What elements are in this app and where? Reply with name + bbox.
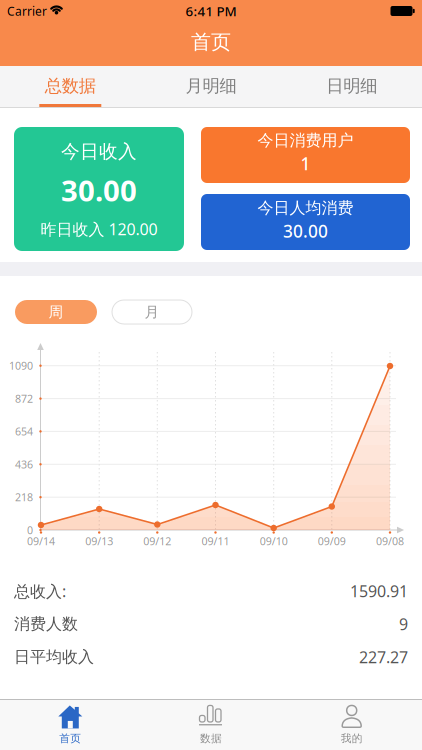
staticText: 今日人均消费 — [257, 198, 353, 218]
button[interactable]: 月明细 — [141, 66, 281, 106]
staticText: 09/10 — [260, 534, 288, 548]
staticText: 总数据 — [45, 75, 96, 97]
staticText: 日明细 — [326, 75, 377, 97]
staticText: Carrier — [7, 3, 47, 19]
staticText: 数据 — [200, 732, 222, 745]
staticText: 436 — [15, 457, 33, 471]
button[interactable]: 总数据 — [0, 66, 140, 106]
staticText: 总收入: — [14, 580, 66, 602]
button[interactable]: 首页 — [0, 700, 140, 750]
staticText: 日平均收入 — [14, 647, 94, 667]
staticText: 今日消费用户 — [257, 131, 353, 150]
button[interactable]: 数据 — [141, 700, 281, 750]
staticText: 0 — [27, 523, 33, 537]
staticText: 昨日收入 120.00 — [40, 218, 157, 240]
staticText: 首页 — [59, 732, 81, 745]
staticText: 654 — [15, 424, 33, 438]
staticText: 872 — [15, 391, 33, 406]
staticText: 09/13 — [85, 534, 113, 548]
staticText: 我的 — [341, 732, 363, 745]
staticText: 1590.91 — [350, 580, 408, 602]
staticText: 30.00 — [283, 219, 328, 242]
staticText: 6:41 PM — [185, 2, 236, 20]
staticText: 月明细 — [185, 75, 236, 97]
staticText: 09/12 — [143, 534, 171, 548]
button[interactable]: 月 — [112, 300, 192, 324]
staticText: 首页 — [191, 30, 231, 54]
button[interactable]: 周 — [15, 300, 97, 324]
staticText: 9 — [399, 613, 408, 635]
staticText: 218 — [15, 490, 33, 504]
staticText: 09/11 — [201, 534, 229, 548]
staticText: 消费人数 — [14, 614, 78, 634]
staticText: 1090 — [9, 359, 33, 373]
staticText: 今日收入 — [61, 140, 137, 163]
staticText: 周 — [48, 303, 63, 321]
staticText: 1 — [300, 152, 310, 175]
staticText: 227.27 — [359, 646, 408, 668]
staticText: 09/08 — [376, 534, 404, 548]
button[interactable]: 日明细 — [282, 66, 422, 106]
staticText: 月 — [144, 303, 159, 321]
staticText: 30.00 — [61, 170, 137, 209]
staticText: 09/09 — [318, 534, 346, 548]
staticText: 09/14 — [27, 534, 55, 548]
button[interactable]: 我的 — [282, 700, 422, 750]
